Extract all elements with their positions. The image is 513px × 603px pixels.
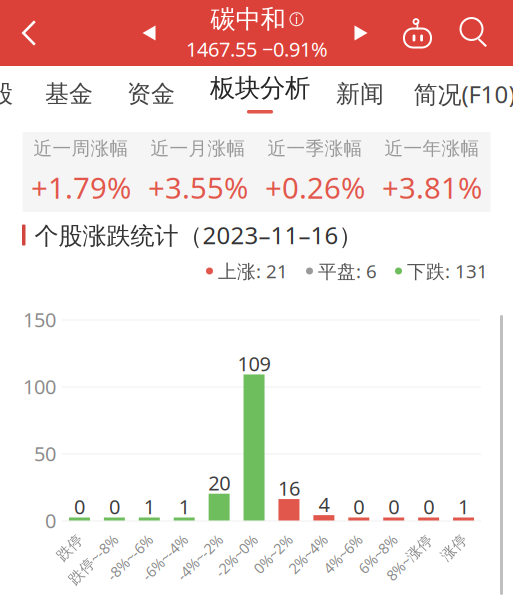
staticText: 0 <box>423 493 434 520</box>
staticText: 6%~8% <box>347 527 395 547</box>
button[interactable]: 基金 <box>39 66 99 122</box>
staticText: 150 <box>23 306 56 333</box>
staticText: 0 <box>45 507 56 534</box>
staticText: 涨停 <box>434 528 464 546</box>
staticText: +1.79% <box>31 168 131 207</box>
staticText: 近一周涨幅 <box>33 137 128 160</box>
staticText: 0 <box>109 493 120 520</box>
staticText: 个股涨跌统计（2023–11–16） <box>34 219 362 251</box>
button[interactable]: Next <box>337 0 385 66</box>
button[interactable]: Search <box>447 0 503 66</box>
staticText: +3.81% <box>382 168 482 207</box>
staticText: 1 <box>458 493 469 520</box>
staticText: 资金 <box>127 79 175 109</box>
staticText: 0 <box>74 493 85 520</box>
staticText: -2%~0% <box>202 527 255 547</box>
staticText: 平盘: 6 <box>318 259 377 283</box>
staticText: 4%~6% <box>312 527 360 547</box>
staticText: 20 <box>208 469 230 496</box>
button[interactable]: 板块分析 <box>210 66 310 122</box>
staticText: 0%~2% <box>242 527 290 547</box>
staticText: 股 <box>0 79 13 109</box>
button[interactable]: 新闻 <box>330 66 390 122</box>
staticText: -8%~-6% <box>92 527 150 547</box>
staticText: i <box>295 11 298 27</box>
staticText: 109 <box>237 350 270 377</box>
staticText: -6%~-4% <box>127 527 185 547</box>
button[interactable]: Previous <box>125 0 173 66</box>
staticText: 板块分析 <box>210 72 310 103</box>
staticText: +0.26% <box>265 168 365 207</box>
staticText: 8%~涨停 <box>372 527 430 547</box>
staticText: 下跌: 131 <box>407 259 488 283</box>
staticText: +3.55% <box>148 168 248 207</box>
staticText: 碳中和 <box>210 4 285 35</box>
staticText: -4%~-2% <box>162 527 220 547</box>
staticText: 0 <box>388 493 399 520</box>
staticText: 上涨: 21 <box>218 259 288 283</box>
staticText: 简况(F10) <box>413 78 513 110</box>
staticText: 新闻 <box>336 79 384 109</box>
staticText: 50 <box>34 440 56 467</box>
staticText: 近一年涨幅 <box>384 137 479 160</box>
button[interactable]: 简况(F10) <box>412 66 513 122</box>
button[interactable]: Assistant <box>390 0 446 66</box>
staticText: 0 <box>353 493 364 520</box>
button[interactable]: 股 <box>0 66 18 122</box>
staticText: 基金 <box>45 79 93 109</box>
staticText: 跌停~-8% <box>52 527 115 547</box>
button[interactable]: Back <box>2 0 56 66</box>
staticText: 1467.55 −0.91% <box>186 36 328 62</box>
staticText: 16 <box>278 475 300 501</box>
staticText: 近一月涨幅 <box>150 137 245 160</box>
staticText: 1 <box>144 493 155 520</box>
staticText: 近一季涨幅 <box>267 137 362 160</box>
staticText: 100 <box>23 373 56 400</box>
staticText: 4 <box>318 491 329 517</box>
staticText: 2%~4% <box>277 527 325 547</box>
staticText: 1 <box>179 493 190 520</box>
button[interactable]: 资金 <box>121 66 181 122</box>
staticText: 跌停 <box>50 528 80 546</box>
